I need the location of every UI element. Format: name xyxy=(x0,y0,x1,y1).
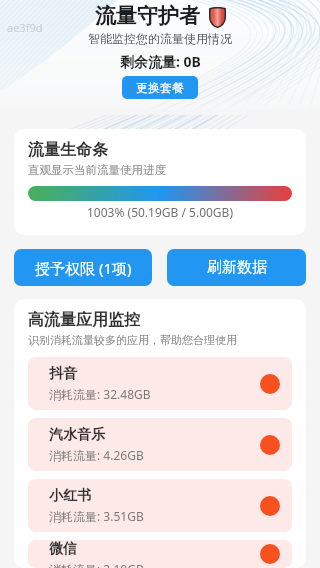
button[interactable]: 小红书 xyxy=(28,479,292,532)
staticText: 消耗流量: 3.51GB xyxy=(49,508,144,524)
staticText: ae3f9d xyxy=(7,20,43,35)
staticText: 抖音 xyxy=(49,365,77,383)
staticText: 剩余流量: 0B xyxy=(120,52,201,71)
staticText: 刷新数据 xyxy=(207,258,267,277)
staticText: 消耗流量: 2.10GB xyxy=(49,561,144,568)
staticText: 流量生命条 xyxy=(28,140,108,160)
staticText: 智能监控您的流量使用情况 xyxy=(88,31,232,46)
staticText: 1003% (50.19GB / 5.00GB) xyxy=(28,204,292,220)
staticText: 消耗流量: 32.48GB xyxy=(49,386,151,402)
button[interactable]: 刷新数据 xyxy=(167,249,306,286)
staticText: 汽水音乐 xyxy=(49,426,105,444)
staticText: 识别消耗流量较多的应用，帮助您合理使用 xyxy=(28,333,237,347)
button[interactable]: 汽水音乐 xyxy=(28,418,292,471)
staticText: 授予权限 (1项) xyxy=(35,258,132,278)
button[interactable]: 更换套餐 xyxy=(122,76,198,99)
button[interactable]: 抖音 xyxy=(28,357,292,410)
staticText: 消耗流量: 4.26GB xyxy=(49,447,144,463)
staticText: 直观显示当前流量使用进度 xyxy=(28,163,166,177)
button[interactable]: 授予权限 (1项) xyxy=(14,249,152,286)
staticText: 高流量应用监控 xyxy=(28,310,140,330)
button[interactable]: 微信 xyxy=(28,540,292,568)
staticText: 更换套餐 xyxy=(136,80,184,95)
staticText: 流量守护者 xyxy=(95,3,200,29)
staticText: 小红书 xyxy=(49,487,91,505)
staticText: 微信 xyxy=(49,540,77,558)
